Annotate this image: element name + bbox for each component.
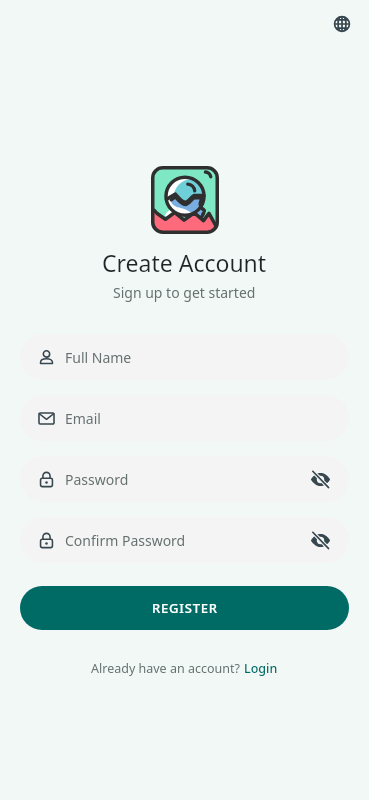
- staticText: Create Account: [102, 247, 267, 278]
- button[interactable]: Toggle password visibility: [307, 466, 333, 492]
- staticText: Already have an account?: [91, 660, 244, 677]
- button[interactable]: Toggle password visibility: [307, 527, 333, 553]
- staticText: Sign up to get started: [113, 283, 256, 302]
- button[interactable]: Login: [244, 660, 278, 677]
- staticText: Password: [65, 470, 129, 489]
- staticText: Confirm Password: [65, 531, 186, 550]
- staticText: Full Name: [65, 348, 132, 367]
- button[interactable]: Email: [20, 395, 349, 441]
- button[interactable]: Confirm Password: [20, 517, 349, 563]
- button[interactable]: Password: [20, 456, 349, 502]
- button[interactable]: Change language: [323, 5, 360, 42]
- button[interactable]: REGISTER: [20, 586, 349, 630]
- staticText: Login: [244, 660, 278, 677]
- staticText: REGISTER: [152, 599, 218, 617]
- staticText: Email: [65, 409, 101, 428]
- button[interactable]: Full Name: [20, 334, 349, 380]
